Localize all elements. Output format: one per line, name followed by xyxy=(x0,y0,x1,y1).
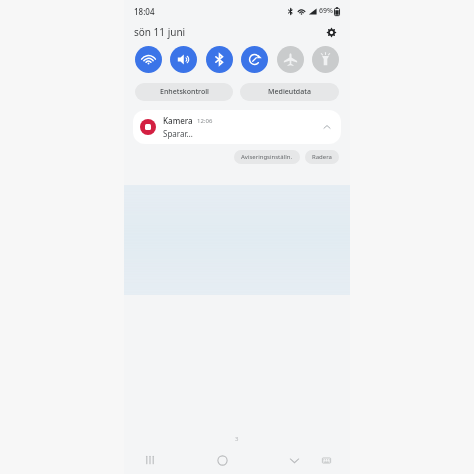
staticText: Sparar… xyxy=(163,128,193,139)
staticText: Aviseringsinställn. xyxy=(241,153,293,161)
button[interactable]: Flight mode xyxy=(277,46,304,73)
button[interactable]: Kamera xyxy=(133,110,341,144)
button[interactable]: Keyboard xyxy=(316,450,336,470)
button[interactable]: Recents xyxy=(138,448,162,472)
staticText: 69% xyxy=(319,6,333,16)
staticText: 18:04 xyxy=(134,6,155,17)
staticText: 12:06 xyxy=(197,117,213,125)
staticText: Radera xyxy=(312,153,332,161)
button[interactable]: Settings xyxy=(322,23,340,41)
button[interactable]: Auto rotate xyxy=(241,46,268,73)
button[interactable]: Enhetskontroll xyxy=(135,83,233,101)
button[interactable]: Medieutdata xyxy=(240,83,339,101)
staticText: sön 11 juni xyxy=(134,25,186,39)
button[interactable]: Collapse xyxy=(320,120,334,134)
button[interactable]: Sound xyxy=(170,46,197,73)
button[interactable]: Flashlight xyxy=(312,46,339,73)
staticText: 3 xyxy=(235,435,239,443)
button[interactable]: Wi-Fi xyxy=(135,46,162,73)
button[interactable]: Home xyxy=(210,448,234,472)
button[interactable]: Back xyxy=(282,448,306,472)
staticText: Enhetskontroll xyxy=(160,87,209,97)
staticText: Kamera xyxy=(163,115,193,126)
button[interactable]: Aviseringsinställn. xyxy=(234,150,300,164)
button[interactable]: Radera xyxy=(305,150,339,164)
button[interactable]: Bluetooth xyxy=(206,46,233,73)
staticText: Medieutdata xyxy=(268,87,311,97)
